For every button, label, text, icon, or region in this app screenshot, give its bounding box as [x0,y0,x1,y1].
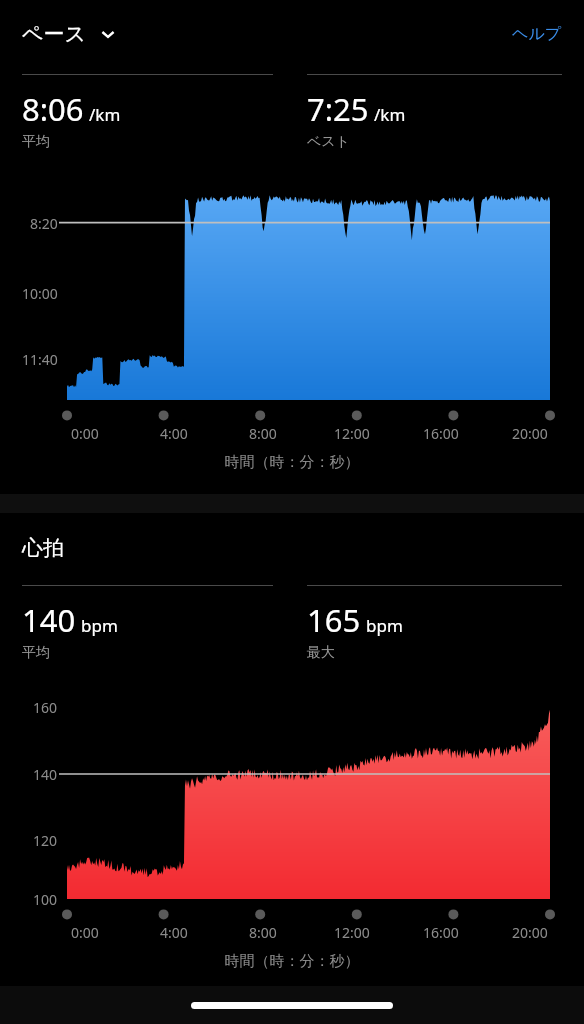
staticText: 100 [33,890,58,909]
button[interactable]: ペース [22,21,124,47]
staticText: 8:00 [249,923,277,942]
staticText: 120 [33,831,58,850]
staticText: 11:40 [22,350,58,369]
staticText: 4:00 [160,923,188,942]
staticText: bpm [81,614,118,637]
staticText: 140 [33,765,58,784]
button[interactable]: ヘルプ [490,18,584,50]
staticText: ペース [22,21,86,47]
staticText: 16:00 [423,424,459,443]
button[interactable]: 165 [307,585,562,662]
staticText: 20:00 [512,923,548,942]
staticText: 最大 [307,644,335,662]
staticText: 160 [33,698,58,717]
staticText: 0:00 [71,424,99,443]
staticText: 7:25 [307,88,369,130]
staticText: 平均 [22,644,50,662]
staticText: 165 [307,599,361,641]
staticText: 8:06 [22,88,84,130]
button[interactable]: 140 [22,585,273,662]
staticText: 16:00 [423,923,459,942]
staticText: 4:00 [160,424,188,443]
staticText: 12:00 [334,923,370,942]
staticText: 時間（時：分：秒） [0,453,584,472]
staticText: /km [89,103,121,126]
button[interactable]: 8:06 [22,74,273,151]
staticText: bpm [366,614,403,637]
staticText: 10:00 [22,284,58,303]
staticText: 心拍 [22,535,64,561]
staticText: /km [374,103,406,126]
staticText: 時間（時：分：秒） [0,952,584,971]
staticText: 平均 [22,133,50,151]
staticText: 20:00 [512,424,548,443]
staticText: 8:00 [249,424,277,443]
staticText: 12:00 [334,424,370,443]
staticText: 140 [22,599,76,641]
staticText: ベスト [307,133,350,151]
staticText: 8:20 [30,214,58,233]
button[interactable]: 7:25 [307,74,562,151]
staticText: ヘルプ [512,24,562,44]
staticText: 0:00 [71,923,99,942]
